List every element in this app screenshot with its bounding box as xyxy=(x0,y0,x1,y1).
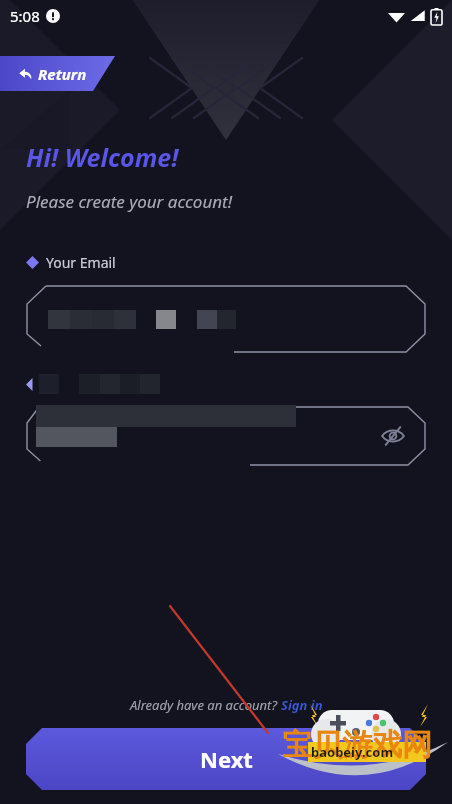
staticText: 宝贝游戏网 xyxy=(282,726,432,764)
button[interactable]: Email input xyxy=(26,284,426,354)
staticText: Sign in xyxy=(281,696,323,714)
staticText: Return xyxy=(38,64,87,84)
staticText: Please create your account! xyxy=(26,190,233,213)
staticText: Next xyxy=(200,744,253,774)
button[interactable]: Return xyxy=(0,56,115,91)
button[interactable]: Next xyxy=(26,728,426,790)
button[interactable]: Already have an account? xyxy=(130,696,323,714)
staticText: baobeiy.com xyxy=(311,743,394,761)
staticText: Your Email xyxy=(46,253,116,272)
staticText: 5:08 xyxy=(10,6,40,26)
staticText: Hi! Welcome! xyxy=(26,140,179,174)
button[interactable]: Hide password xyxy=(380,423,406,449)
button[interactable]: Password input xyxy=(26,405,426,467)
staticText: Already have an account? xyxy=(130,696,281,714)
